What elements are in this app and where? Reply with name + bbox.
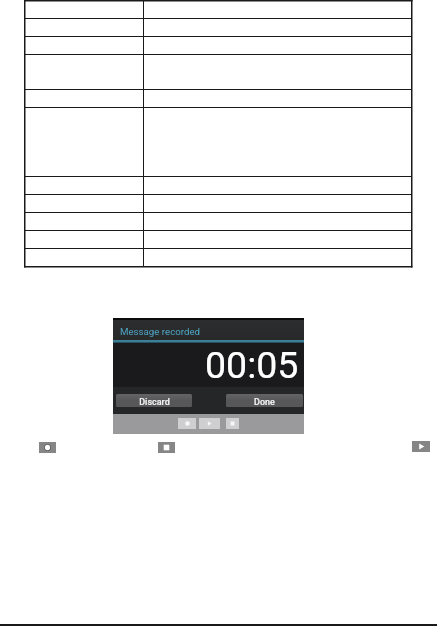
button[interactable]: Stop — [158, 442, 175, 453]
button[interactable]: Play — [412, 441, 430, 452]
staticText: Discard — [139, 397, 170, 407]
staticText: Done — [254, 397, 275, 407]
button[interactable]: Stop — [226, 418, 239, 429]
staticText: Message recorded — [120, 326, 201, 337]
button[interactable]: Record — [39, 442, 56, 453]
button[interactable]: Done — [226, 394, 303, 407]
button[interactable]: Play — [199, 418, 220, 429]
button[interactable]: Discard — [116, 394, 192, 407]
staticText: 00:05 — [205, 343, 299, 387]
button[interactable]: Record — [178, 418, 196, 429]
